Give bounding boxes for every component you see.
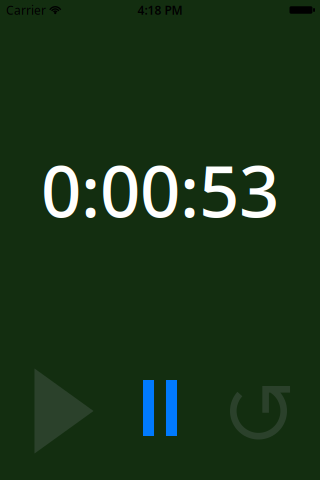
button[interactable]: Reset [213,355,320,467]
button[interactable]: Start [0,355,106,467]
staticText: 0:00:53 [41,143,279,237]
staticText: Carrier [6,2,46,18]
button[interactable]: Pause [107,355,213,467]
staticText: 4:18 PM [137,2,182,18]
